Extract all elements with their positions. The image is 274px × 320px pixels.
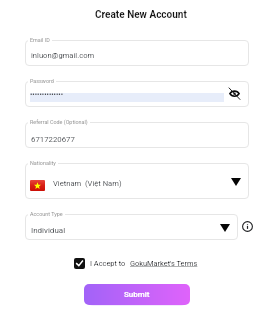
button[interactable]: Account type info <box>242 221 253 232</box>
staticText: Vietnam (Việt Nam) <box>53 179 122 188</box>
button[interactable]: Accept terms checkbox <box>74 258 85 269</box>
button[interactable]: Toggle password visibility <box>229 89 240 98</box>
staticText: •••••••••••••• <box>30 91 64 99</box>
staticText: Email ID <box>30 37 50 43</box>
staticText: I Accept to <box>90 259 126 268</box>
staticText: 6717220677 <box>31 135 75 144</box>
staticText: Submit <box>124 290 150 299</box>
staticText: Nationality <box>30 160 56 166</box>
button[interactable] <box>25 122 249 148</box>
staticText: Password <box>30 78 54 84</box>
staticText: Create New Account <box>95 9 187 21</box>
staticText: Referral Code (Optional) <box>30 119 88 125</box>
button[interactable] <box>25 81 249 107</box>
staticText: Individual <box>31 226 66 235</box>
staticText: inluon@gmail.com <box>31 51 95 60</box>
staticText: Account Type <box>30 211 63 217</box>
button[interactable]: Open dropdown <box>231 178 241 186</box>
button[interactable]: Open dropdown <box>220 224 230 232</box>
button[interactable] <box>25 163 249 199</box>
button[interactable] <box>25 40 249 66</box>
button[interactable] <box>25 214 238 240</box>
button[interactable]: GokuMarket's Terms <box>130 259 198 268</box>
button[interactable]: Submit <box>84 284 190 305</box>
